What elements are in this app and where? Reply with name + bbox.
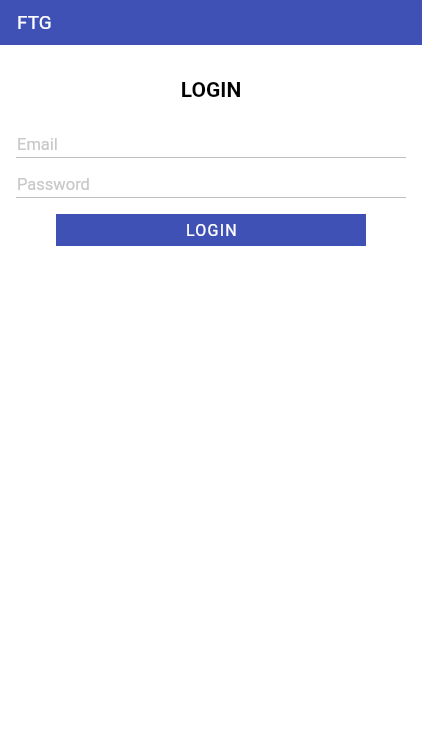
staticText: Password xyxy=(17,175,90,194)
staticText: Email xyxy=(17,135,58,154)
staticText: LOGIN xyxy=(186,221,239,240)
button[interactable]: Email xyxy=(16,135,406,158)
button[interactable]: LOGIN xyxy=(56,214,366,246)
staticText: LOGIN xyxy=(0,78,422,103)
staticText: FTG xyxy=(17,11,52,33)
button[interactable]: Password xyxy=(16,175,406,198)
